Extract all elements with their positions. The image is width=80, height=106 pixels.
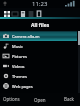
staticText: Camera album <box>12 34 40 39</box>
button[interactable]: Pictures <box>0 51 80 61</box>
button[interactable]: Videos <box>0 61 80 71</box>
staticText: Pictures <box>12 54 28 59</box>
button[interactable]: Camera album <box>0 31 80 41</box>
staticText: Music <box>12 44 23 49</box>
staticText: Videos <box>12 64 25 69</box>
staticText: Back <box>64 96 75 102</box>
button[interactable]: Web pages <box>0 81 80 91</box>
staticText: Web pages <box>12 84 33 89</box>
button[interactable]: Options <box>2 95 21 103</box>
button[interactable]: Videos <box>27 9 35 19</box>
button[interactable]: Back <box>63 95 76 103</box>
staticText: All files <box>31 22 50 29</box>
button[interactable]: Music <box>19 9 27 19</box>
button[interactable]: Images <box>11 9 19 19</box>
button[interactable]: Themes <box>0 71 80 81</box>
button[interactable]: Music <box>0 41 80 51</box>
staticText: 11:23 <box>32 0 48 8</box>
button[interactable]: All files <box>3 9 11 19</box>
button[interactable]: Open <box>33 96 47 104</box>
button[interactable]: Memory card <box>35 9 43 19</box>
staticText: Open <box>34 97 46 103</box>
staticText: Options <box>3 96 20 102</box>
staticText: Themes <box>12 74 27 79</box>
